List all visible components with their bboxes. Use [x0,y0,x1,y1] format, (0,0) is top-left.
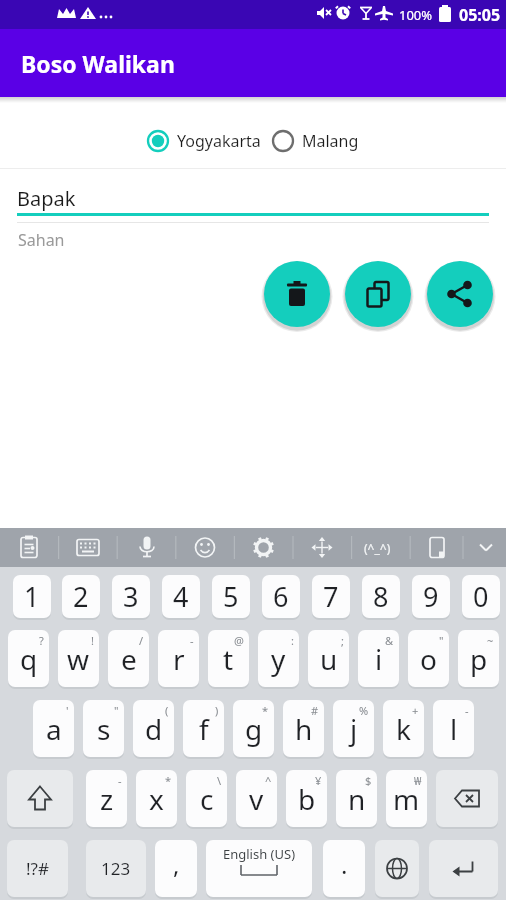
staticText: English (US) [223,845,296,863]
button[interactable]: f [183,700,224,757]
staticText: r [173,640,185,678]
button[interactable]: a [33,700,74,757]
staticText: \ [217,773,222,788]
staticText: + [412,703,419,718]
button[interactable]: j [333,700,374,757]
button[interactable]: 6 [262,575,300,618]
staticText: . [341,848,348,881]
staticText: !?# [26,857,49,880]
button[interactable]: 4 [162,575,200,618]
staticText: 6 [273,578,289,615]
button[interactable] [429,840,498,897]
staticText: b [298,780,316,818]
button[interactable]: . [323,840,365,897]
button[interactable]: w [58,630,99,687]
staticText: e [121,640,137,678]
staticText: ) [215,703,219,718]
button[interactable]: n [336,770,377,827]
button[interactable]: v [236,770,277,827]
button[interactable]: o [408,630,449,687]
button[interactable]: 9 [412,575,450,618]
button[interactable] [7,770,73,827]
staticText: ? [39,633,44,648]
button[interactable]: 3 [112,575,150,618]
staticText: i [375,640,383,678]
staticText: 8 [373,578,389,615]
button[interactable]: Yogyakarta [147,130,261,152]
button[interactable]: m [386,770,427,827]
staticText: 5 [223,578,239,615]
staticText: : [291,633,294,648]
staticText: ₩ [414,773,422,788]
button[interactable]: 2 [62,575,100,618]
staticText: g [245,710,263,748]
button[interactable]: q [8,630,49,687]
button[interactable] [345,261,411,327]
button[interactable] [436,770,498,827]
button[interactable]: 123 [86,840,146,897]
staticText: 123 [101,857,131,880]
button[interactable] [427,261,493,327]
staticText: a [46,710,62,748]
button[interactable]: d [133,700,174,757]
button[interactable]: b [286,770,327,827]
staticText: # [311,703,319,718]
button[interactable]: c [186,770,227,827]
button[interactable]: , [155,840,197,897]
button[interactable]: 0 [462,575,500,618]
staticText: 05:05 [459,4,501,26]
staticText: j [350,710,358,748]
button[interactable]: u [308,630,349,687]
staticText: ^ [265,773,272,788]
button[interactable]: g [233,700,274,757]
staticText: " [439,633,444,648]
button[interactable] [264,261,330,327]
staticText: v [249,780,264,818]
button[interactable]: x [136,770,177,827]
staticText: t [223,640,234,678]
button[interactable]: y [258,630,299,687]
staticText: " [114,703,119,718]
staticText: @ [234,633,244,648]
staticText: w [67,640,90,678]
staticText: n [348,780,366,818]
button[interactable]: z [86,770,127,827]
staticText: f [199,710,209,748]
staticText: Sahan [18,229,65,251]
staticText: o [420,640,437,678]
staticText: d [145,710,163,748]
button[interactable]: 5 [212,575,250,618]
button[interactable]: p [458,630,499,687]
button[interactable]: 1 [13,575,51,618]
staticText: 7 [323,578,339,615]
staticText: y [271,640,286,678]
staticText: m [393,780,420,818]
button[interactable]: English (US) [206,840,312,897]
staticText: * [165,773,172,788]
staticText: ' [66,703,69,718]
button[interactable]: t [208,630,249,687]
staticText: h [295,710,313,748]
staticText: ; [341,633,344,648]
button[interactable]: i [358,630,399,687]
button[interactable]: l [433,700,474,757]
staticText: k [396,710,411,748]
staticText: q [20,640,38,678]
staticText: Malang [302,130,359,152]
staticText: x [149,780,164,818]
button[interactable]: h [283,700,324,757]
staticText: z [100,780,114,818]
button[interactable]: 7 [312,575,350,618]
button[interactable]: r [158,630,199,687]
button[interactable]: k [383,700,424,757]
button[interactable]: s [83,700,124,757]
button[interactable]: e [108,630,149,687]
button[interactable]: !?# [7,840,68,897]
button[interactable]: Malang [272,130,359,152]
button[interactable] [375,840,419,897]
staticText: ! [91,633,94,648]
staticText: % [359,703,369,718]
staticText: (^_^) [364,540,391,556]
button[interactable]: 8 [362,575,400,618]
staticText: 100% [399,6,433,24]
